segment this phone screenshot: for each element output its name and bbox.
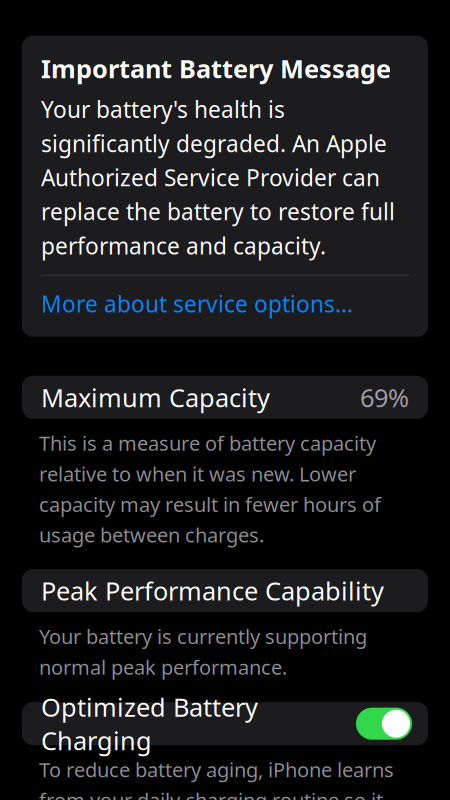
staticText: Peak Performance Capability	[41, 574, 384, 607]
button[interactable]: Optimized Battery Charging	[0, 702, 450, 745]
staticText: Your battery's health is significantly d…	[41, 94, 395, 261]
staticText: 69%	[360, 380, 409, 414]
staticText: Your battery is currently supporting nor…	[39, 623, 367, 680]
staticText: Important Battery Message	[41, 52, 391, 85]
staticText: To reduce battery aging, iPhone learns f…	[39, 756, 394, 800]
staticText: Maximum Capacity	[41, 380, 270, 414]
staticText: This is a measure of battery capacity re…	[39, 430, 381, 548]
button[interactable]: More about service options...	[41, 289, 409, 323]
staticText: Optimized Battery Charging	[41, 690, 258, 757]
staticText: More about service options...	[41, 289, 353, 319]
